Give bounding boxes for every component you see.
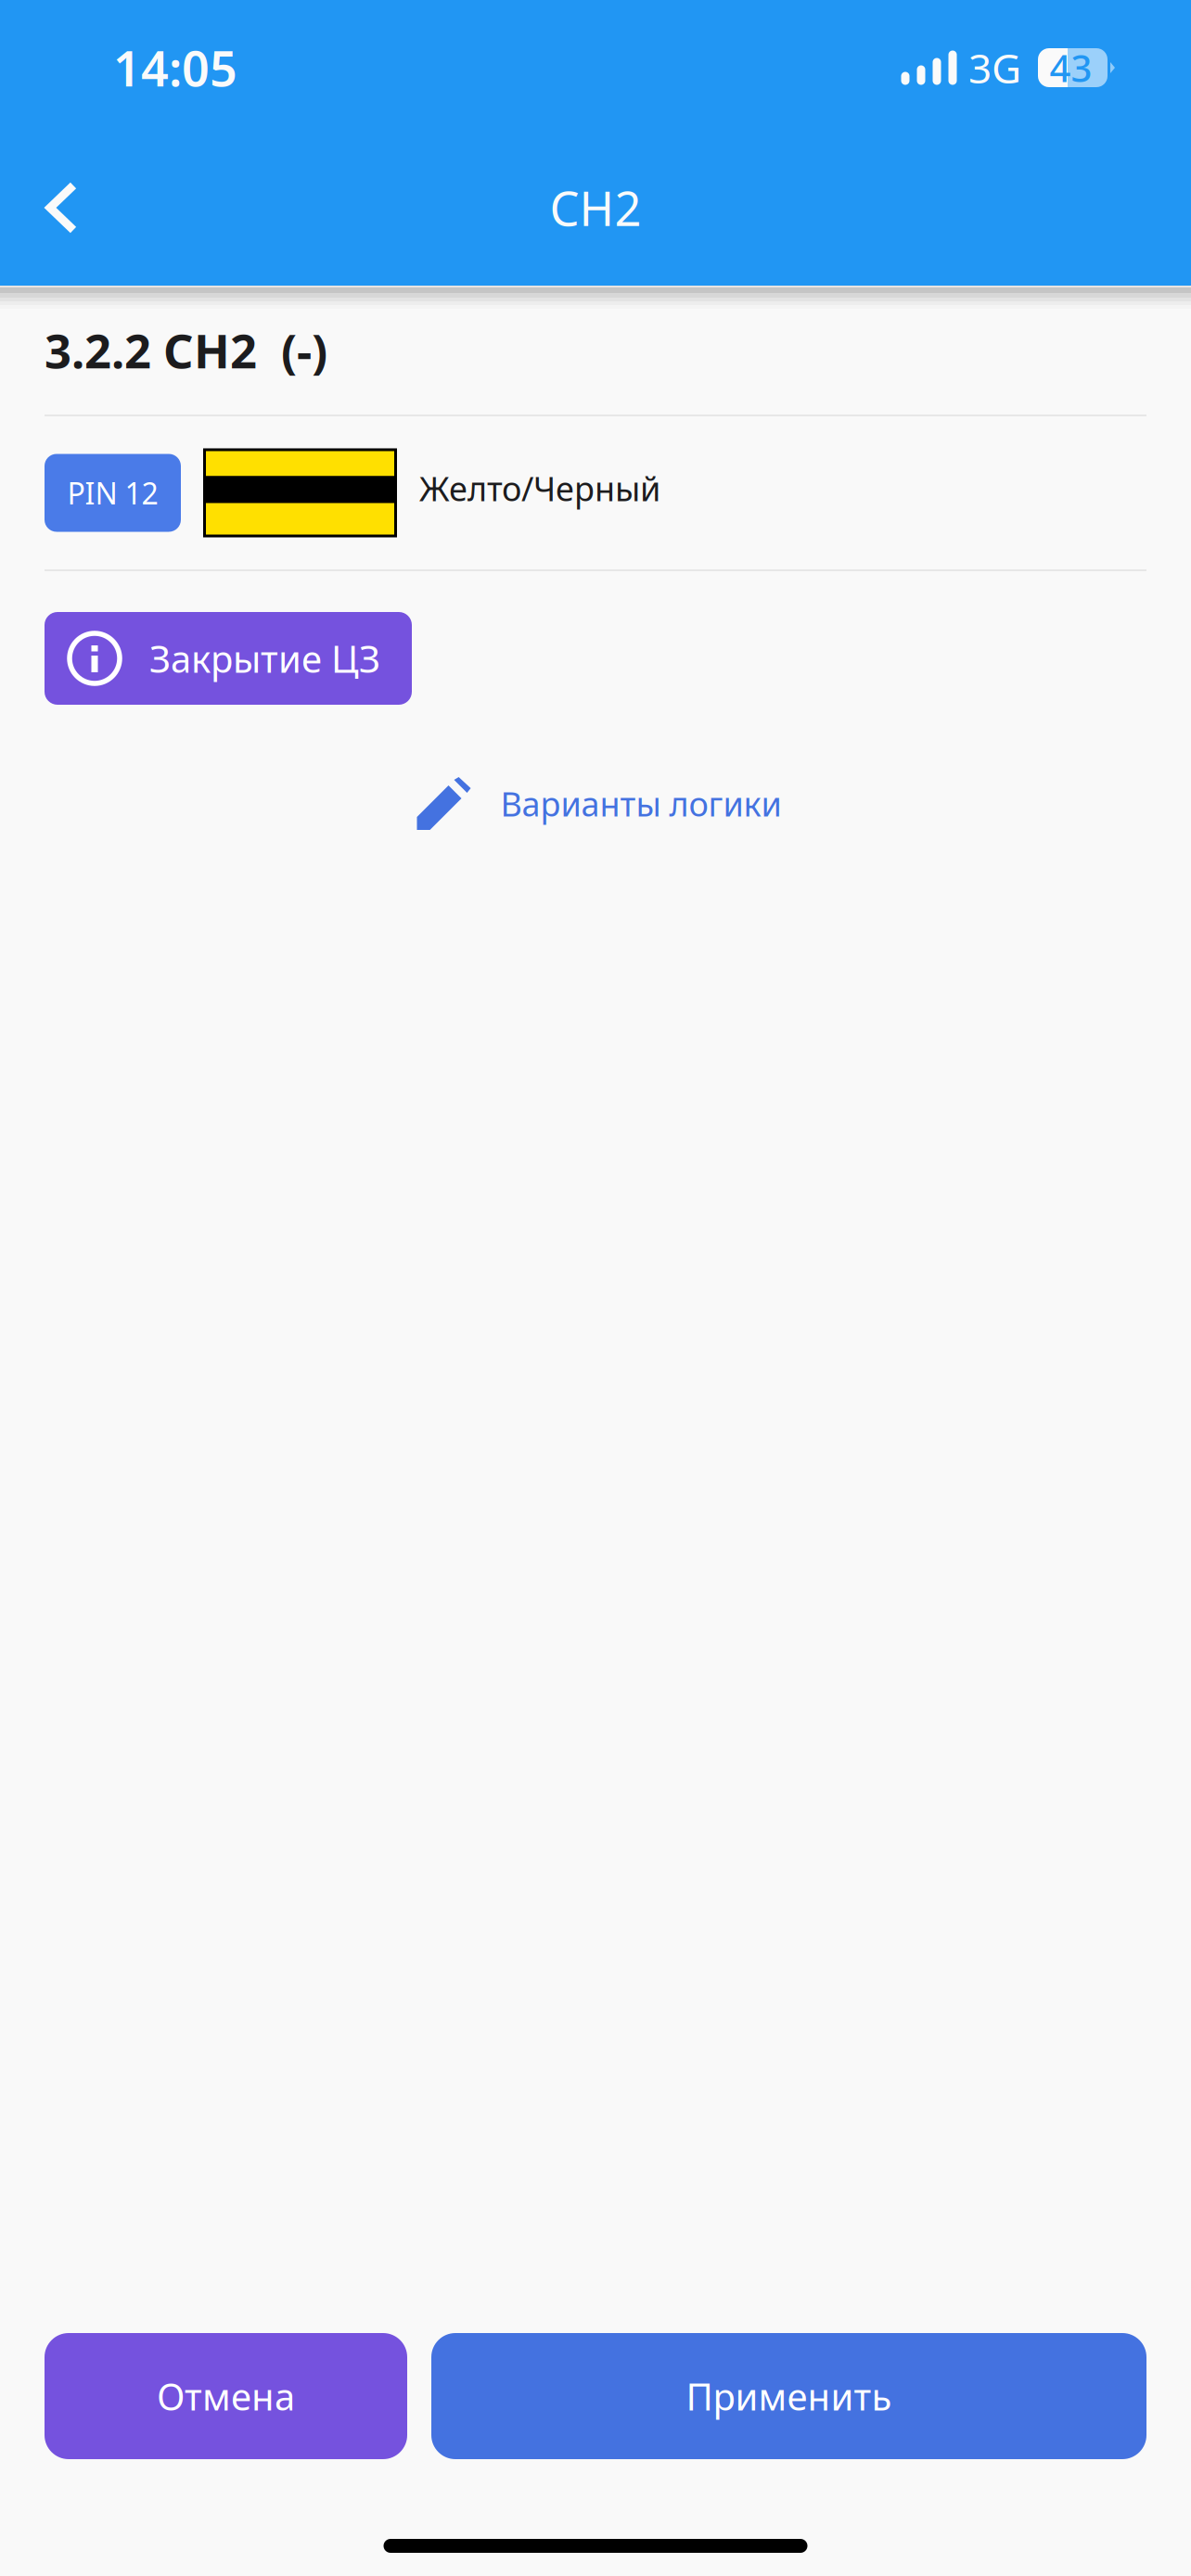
staticText: Отмена — [157, 2371, 295, 2421]
staticText: Закрытие ЦЗ — [149, 634, 380, 683]
staticText: CH2 — [550, 177, 641, 239]
staticText: 14:05 — [113, 36, 237, 100]
staticText: PIN 12 — [67, 473, 158, 513]
staticText: 43 — [1050, 43, 1092, 92]
staticText: Применить — [686, 2371, 892, 2421]
button[interactable]: Отмена — [45, 2333, 407, 2459]
button[interactable]: Варианты логики — [413, 762, 778, 845]
button[interactable]: Back — [45, 155, 147, 266]
staticText: 3.2.2 CH2 (-) — [45, 319, 327, 381]
button[interactable]: PIN 12 — [45, 454, 181, 532]
staticText: Желто/Черный — [419, 466, 660, 510]
staticText: 3G — [968, 41, 1021, 95]
staticText: Варианты логики — [500, 781, 781, 826]
button[interactable]: Закрытие ЦЗ — [45, 612, 412, 705]
button[interactable]: Применить — [431, 2333, 1146, 2459]
